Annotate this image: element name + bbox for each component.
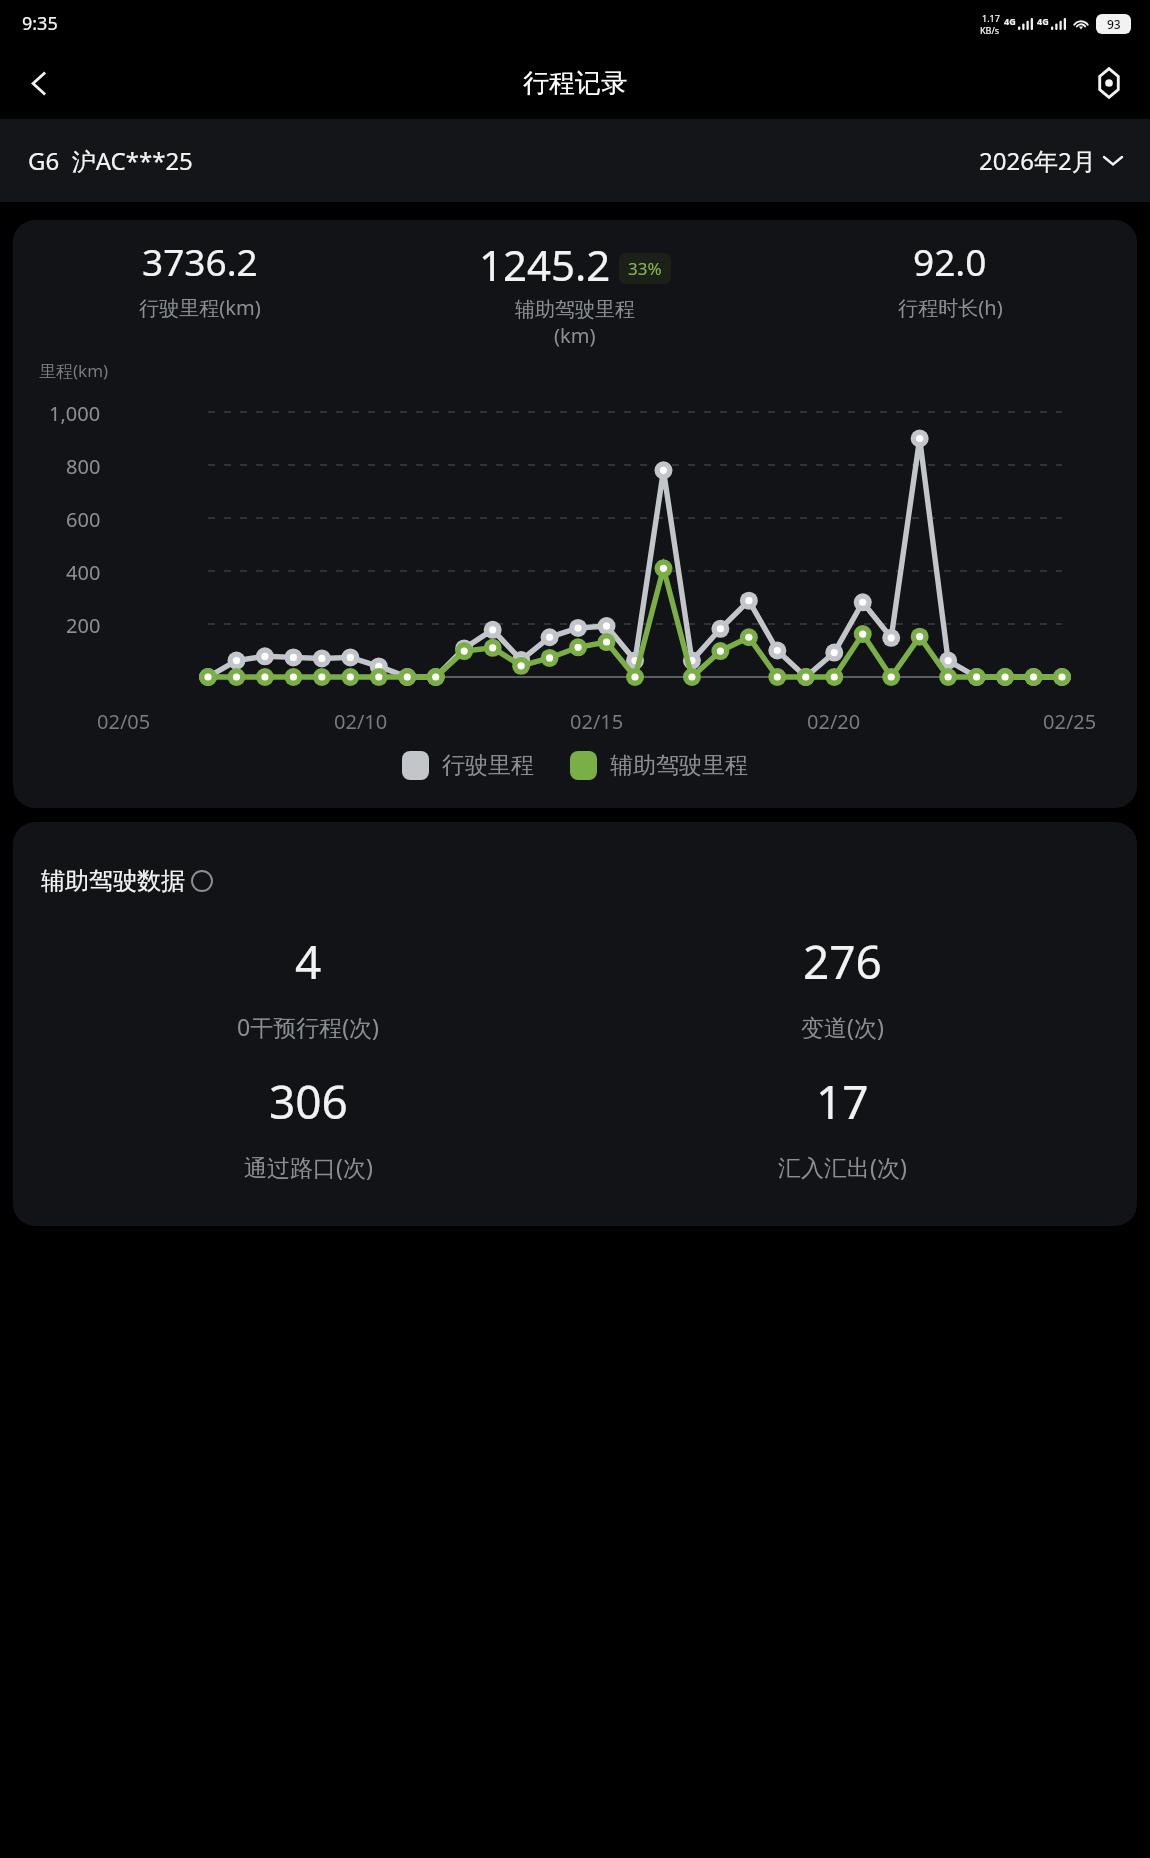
staticText: 200 <box>66 612 101 639</box>
staticText: 02/10 <box>334 708 388 735</box>
staticText: (km) <box>554 322 596 349</box>
staticText: 1245.2 <box>479 236 611 293</box>
staticText: 92.0 <box>913 236 987 286</box>
staticText: 4G <box>1037 15 1049 27</box>
button[interactable]: 辅助驾驶数据 <box>41 866 213 896</box>
staticText: 02/05 <box>97 708 151 735</box>
staticText: 里程(km) <box>39 359 109 382</box>
staticText: 3736.2 <box>142 236 258 286</box>
staticText: 2026年2月 <box>979 144 1096 177</box>
staticText: 17 <box>816 1070 869 1133</box>
staticText: 0干预行程(次) <box>237 1011 379 1042</box>
staticText: 辅助驾驶里程 <box>515 297 635 322</box>
button[interactable]: Settings <box>1080 54 1138 112</box>
staticText: 行程时长(h) <box>898 294 1003 321</box>
staticText: 600 <box>66 506 101 533</box>
staticText: 辅助驾驶里程 <box>610 751 748 780</box>
staticText: 276 <box>803 930 882 993</box>
staticText: 1,000 <box>49 400 101 427</box>
button[interactable]: Back <box>10 54 68 112</box>
staticText: 02/20 <box>807 708 861 735</box>
staticText: 辅助驾驶数据 <box>41 866 185 896</box>
staticText: 4G <box>1004 15 1016 27</box>
staticText: 400 <box>66 559 101 586</box>
staticText: 行程记录 <box>523 67 627 100</box>
staticText: 800 <box>66 453 101 480</box>
staticText: 1.17 <box>982 12 1000 24</box>
staticText: G6 沪AC***25 <box>28 144 193 177</box>
staticText: 4 <box>295 930 322 993</box>
staticText: KB/s <box>980 24 1000 36</box>
staticText: 33% <box>628 257 662 280</box>
staticText: 行驶里程 <box>442 751 534 780</box>
staticText: 9:35 <box>22 11 58 36</box>
staticText: 行驶里程(km) <box>139 294 261 321</box>
staticText: 变道(次) <box>801 1011 884 1042</box>
button[interactable]: 2026年2月 <box>979 144 1122 177</box>
staticText: 汇入汇出(次) <box>778 1151 907 1182</box>
staticText: 通过路口(次) <box>244 1151 373 1182</box>
staticText: 93 <box>1107 16 1121 32</box>
staticText: 02/25 <box>1043 708 1097 735</box>
staticText: 02/15 <box>570 708 624 735</box>
staticText: 306 <box>269 1070 348 1133</box>
